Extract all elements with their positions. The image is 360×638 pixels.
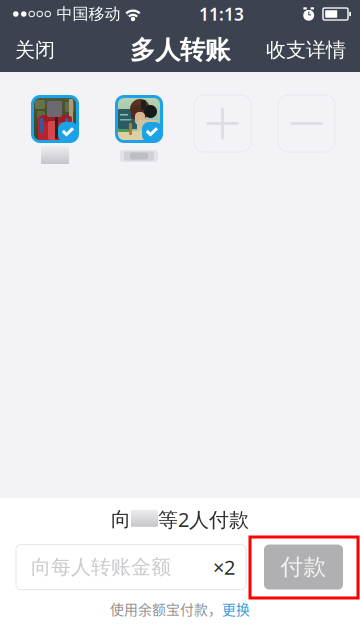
button[interactable]: 移除收款人 (278, 95, 335, 152)
staticText: 11:13 (199, 2, 244, 25)
button[interactable]: 收款人 1，已选择 (31, 95, 79, 143)
staticText: 中国移动 (56, 4, 120, 24)
staticText: 收支详情 (266, 38, 346, 62)
button[interactable]: 添加收款人 (194, 95, 251, 152)
staticText: 使用余额宝付款， (110, 599, 222, 619)
staticText: 等2人付款 (158, 506, 249, 533)
staticText: 付款 (280, 553, 326, 581)
staticText: 向 (111, 507, 131, 532)
button[interactable]: 向每人转账金额 (16, 545, 246, 590)
staticText: 向每人转账金额 (31, 555, 171, 579)
staticText: 更换 (222, 599, 250, 619)
staticText: ×2 (213, 554, 235, 580)
button[interactable]: 关闭 (0, 28, 70, 72)
button[interactable]: 收支详情 (252, 28, 360, 72)
staticText: 关闭 (15, 38, 55, 62)
button[interactable]: 付款 (264, 545, 343, 590)
button[interactable]: 收款人 2，已选择 (115, 95, 163, 143)
staticText: 多人转账 (130, 34, 230, 65)
button[interactable]: 更换 (222, 599, 250, 619)
